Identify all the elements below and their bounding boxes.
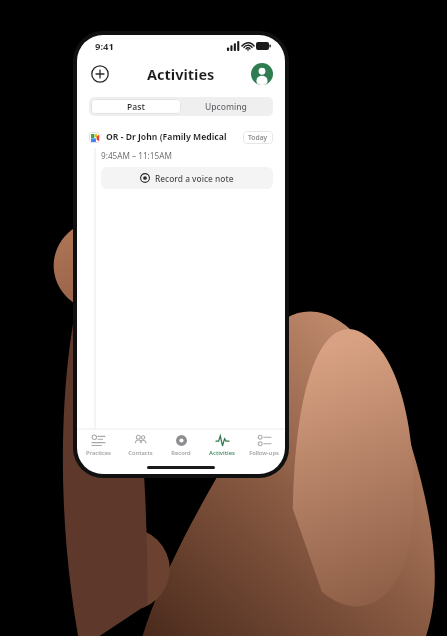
staticText: Record xyxy=(171,449,191,457)
staticText: Contacts xyxy=(128,449,153,457)
button[interactable]: Profile xyxy=(251,63,273,85)
staticText: Follow-ups xyxy=(249,449,279,457)
button[interactable]: Record xyxy=(161,430,201,460)
staticText: Past xyxy=(127,101,145,113)
button[interactable]: Record a voice note xyxy=(101,167,273,189)
staticText: Today xyxy=(248,133,268,142)
button[interactable]: Past xyxy=(91,99,181,114)
staticText: Activities xyxy=(147,64,215,84)
staticText: 9:45AM – 11:15AM xyxy=(101,150,172,161)
staticText: Activities xyxy=(209,449,235,457)
button[interactable]: Contacts xyxy=(120,430,160,460)
button[interactable]: Practices xyxy=(78,430,118,460)
staticText: Practices xyxy=(86,449,111,457)
button[interactable]: OR - Dr John (Family Medical Clinic) xyxy=(89,126,273,148)
button[interactable]: Add xyxy=(89,63,111,85)
button[interactable]: Upcoming xyxy=(181,99,271,114)
staticText: OR - Dr John (Family Medical Clinic) xyxy=(106,131,239,143)
staticText: Upcoming xyxy=(205,101,247,113)
staticText: Record a voice note xyxy=(155,173,234,184)
button[interactable]: Follow-ups xyxy=(244,430,284,460)
staticText: 9:41 xyxy=(95,40,114,53)
button[interactable]: Activities xyxy=(202,430,242,460)
